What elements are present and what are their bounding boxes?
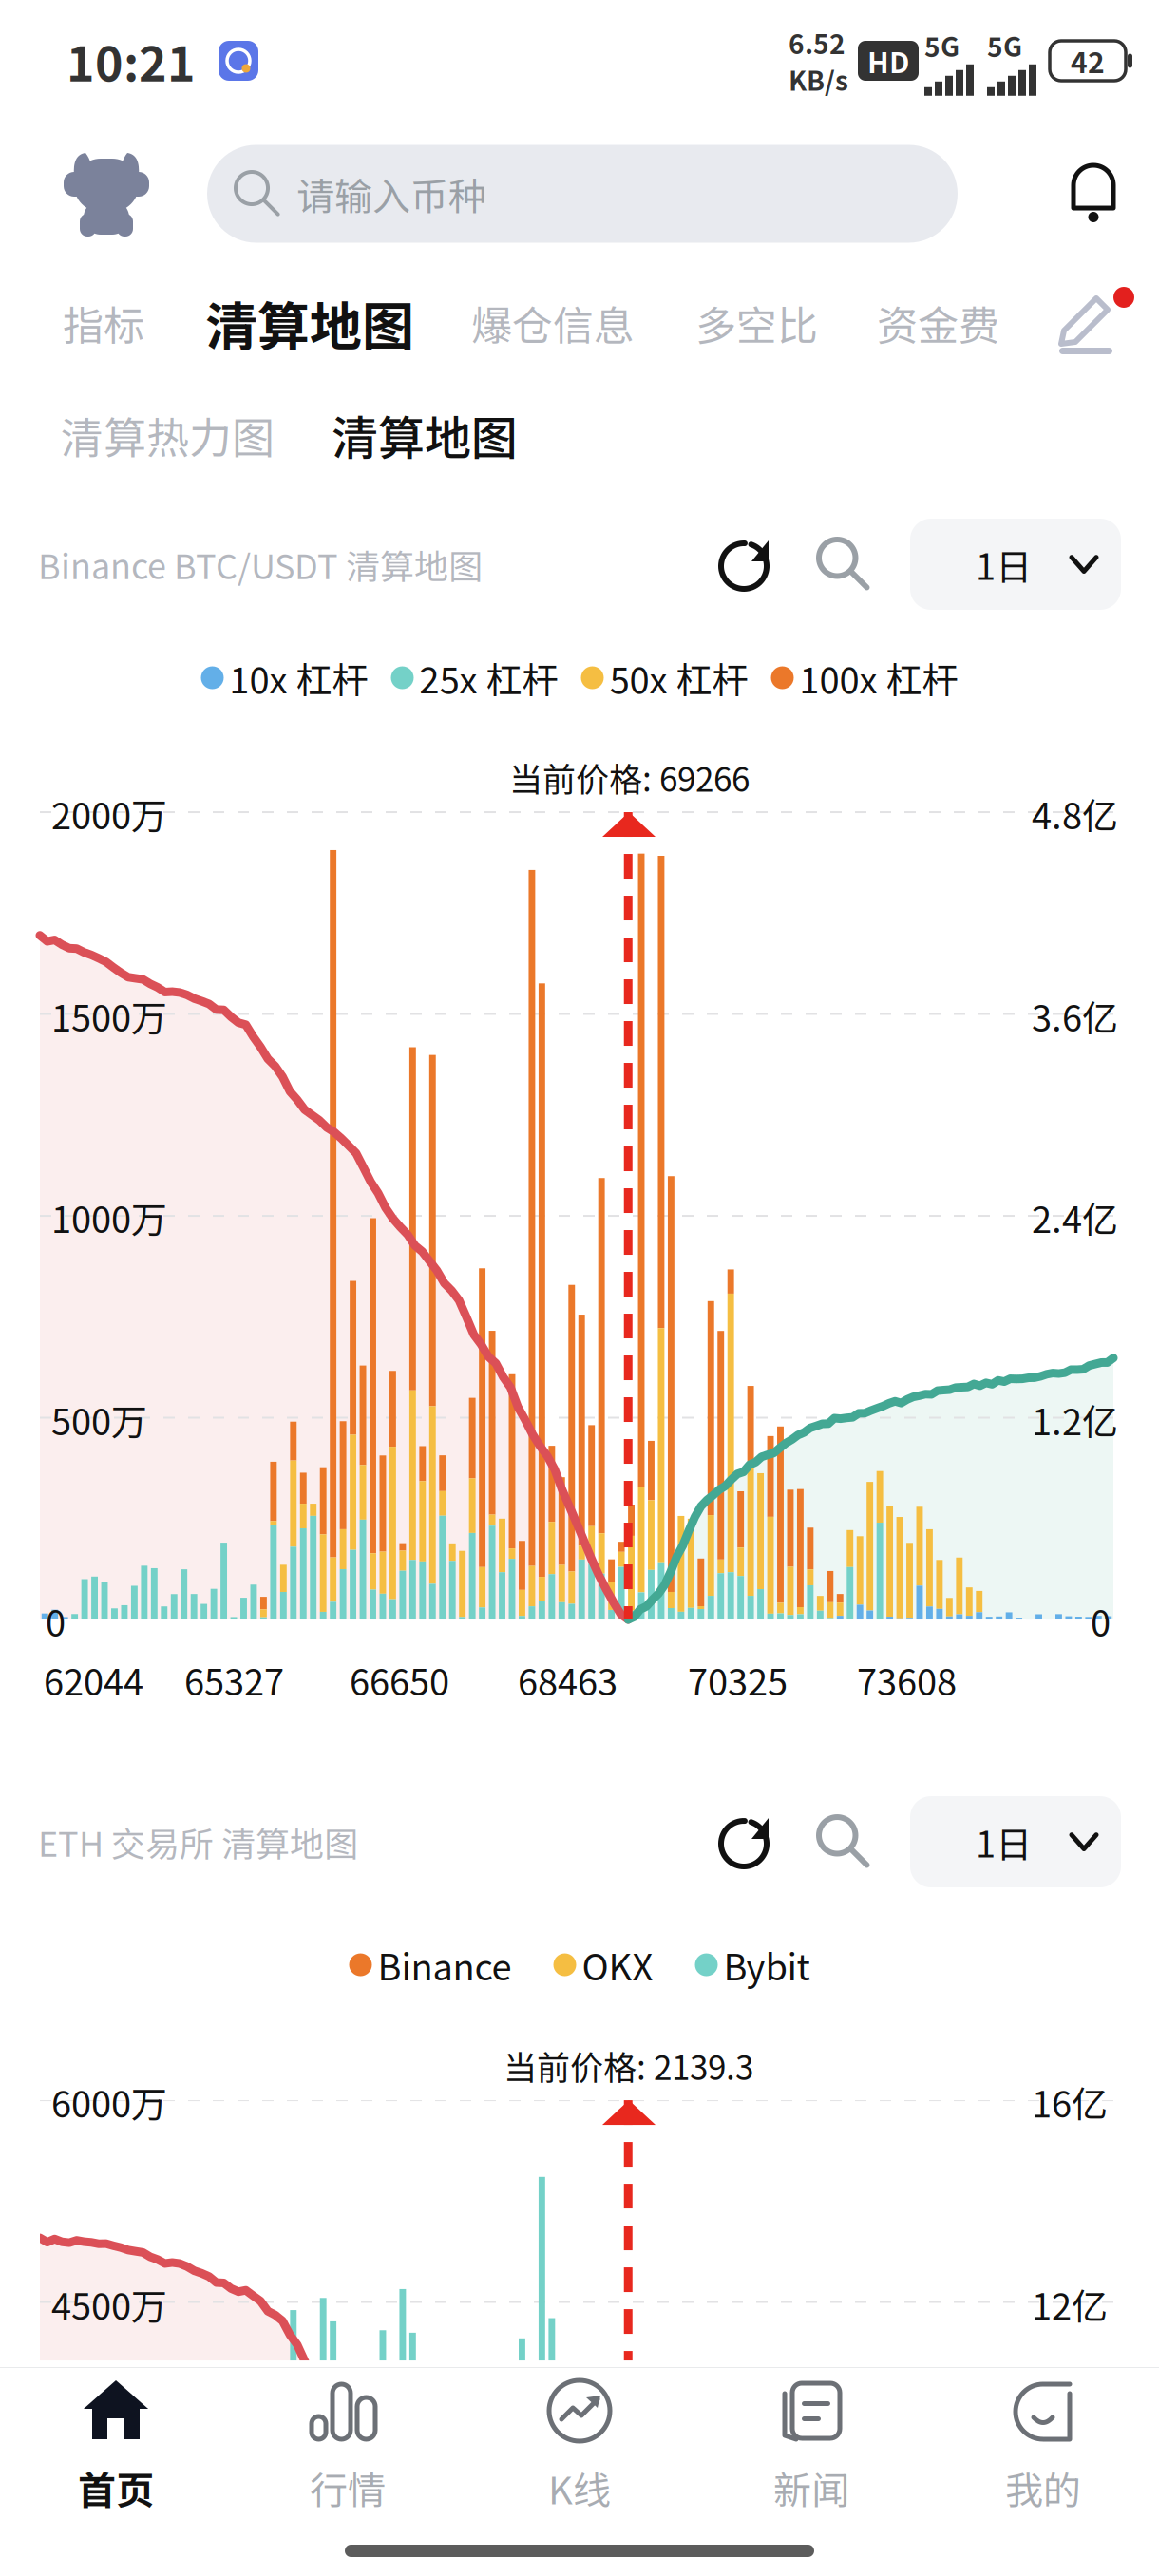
staticText: 清算热力图 — [61, 404, 275, 466]
staticText: 100x 杠杆 — [799, 652, 958, 704]
staticText: 68463 — [518, 1654, 617, 1706]
button[interactable]: 指标 — [63, 293, 144, 353]
button[interactable]: 爆仓信息 — [471, 293, 635, 353]
staticText: Binance BTC/USDT 清算地图 — [38, 539, 483, 589]
button[interactable]: 1日 — [910, 519, 1121, 610]
staticText: 66650 — [350, 1654, 449, 1706]
staticText: 当前价格: 69266 — [509, 753, 750, 801]
button[interactable]: 首页 — [0, 2361, 232, 2534]
staticText: 请输入币种 — [296, 166, 486, 221]
staticText: 42 — [1071, 40, 1105, 81]
staticText: 1500万 — [51, 990, 167, 1042]
staticText: OKX — [582, 1939, 653, 1991]
staticText: 清算地图 — [205, 285, 414, 361]
button[interactable]: 清算地图 — [332, 401, 518, 469]
staticText: 500万 — [51, 1393, 147, 1446]
staticText: Binance — [378, 1939, 512, 1991]
staticText: 首页 — [78, 2460, 154, 2515]
button[interactable]: 新闻 — [695, 2361, 927, 2534]
staticText: 1日 — [976, 538, 1032, 590]
staticText: 5G — [987, 26, 1022, 64]
button[interactable]: Refresh — [716, 1812, 771, 1871]
staticText: 12亿 — [1032, 2278, 1108, 2330]
button[interactable]: Edit — [1056, 287, 1134, 359]
staticText: 73608 — [857, 1654, 957, 1706]
button[interactable]: 资金费 — [877, 293, 999, 353]
staticText: 新闻 — [773, 2460, 849, 2515]
staticText: 1.2亿 — [1032, 1393, 1118, 1446]
staticText: 我的 — [1005, 2460, 1081, 2515]
staticText: 资金费 — [877, 293, 999, 353]
button[interactable]: Refresh — [716, 535, 771, 594]
staticText: 1000万 — [51, 1191, 167, 1243]
staticText: 4.8亿 — [1032, 787, 1118, 840]
staticText: 指标 — [63, 293, 144, 353]
button[interactable]: 多空比 — [695, 293, 818, 353]
button[interactable]: 行情 — [232, 2361, 464, 2534]
staticText: 70325 — [688, 1654, 788, 1706]
staticText: 2000万 — [51, 787, 167, 840]
staticText: 0 — [1091, 1595, 1111, 1647]
staticText: KB/s — [788, 60, 848, 98]
button[interactable]: Notifications — [1068, 164, 1119, 223]
staticText: 行情 — [310, 2460, 386, 2515]
staticText: 0 — [46, 1595, 66, 1647]
button[interactable]: 请输入币种 — [207, 145, 958, 243]
staticText: 6000万 — [51, 2075, 167, 2128]
button[interactable]: 1日 — [910, 1796, 1121, 1887]
button[interactable]: 清算地图 — [205, 285, 414, 361]
staticText: 5G — [924, 26, 959, 64]
staticText: Bybit — [723, 1939, 810, 1991]
staticText: K线 — [548, 2460, 611, 2515]
staticText: 65327 — [184, 1654, 284, 1706]
staticText: 10:21 — [66, 26, 196, 95]
staticText: 2.4亿 — [1032, 1191, 1118, 1243]
button[interactable]: Home — [61, 147, 152, 240]
staticText: 50x 杠杆 — [609, 652, 748, 704]
button[interactable]: 我的 — [927, 2361, 1159, 2534]
staticText: ETH 交易所 清算地图 — [38, 1817, 358, 1867]
button[interactable]: 清算热力图 — [61, 404, 275, 466]
button[interactable]: Search — [819, 540, 868, 589]
staticText: 清算地图 — [332, 401, 518, 469]
staticText: 6.52 — [788, 23, 845, 62]
staticText: 多空比 — [695, 293, 818, 353]
staticText: 3.6亿 — [1032, 990, 1118, 1042]
button[interactable]: Search — [819, 1817, 868, 1866]
button[interactable]: K线 — [464, 2361, 695, 2534]
staticText: 10x 杠杆 — [229, 652, 368, 704]
staticText: HD — [867, 40, 909, 81]
staticText: 25x 杠杆 — [419, 652, 558, 704]
staticText: 爆仓信息 — [471, 293, 635, 353]
staticText: 16亿 — [1032, 2075, 1108, 2128]
staticText: 4500万 — [51, 2278, 167, 2330]
staticText: 当前价格: 2139.3 — [503, 2041, 753, 2089]
staticText: 1日 — [976, 1816, 1032, 1868]
staticText: 62044 — [44, 1654, 143, 1706]
